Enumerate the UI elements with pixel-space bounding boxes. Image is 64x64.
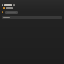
button[interactable]: Status	[2, 11, 3, 13]
button[interactable]	[2, 3, 62, 6]
button[interactable]: Highlighted item	[2, 7, 62, 9]
button[interactable]	[5, 11, 18, 14]
button[interactable]	[2, 16, 62, 19]
